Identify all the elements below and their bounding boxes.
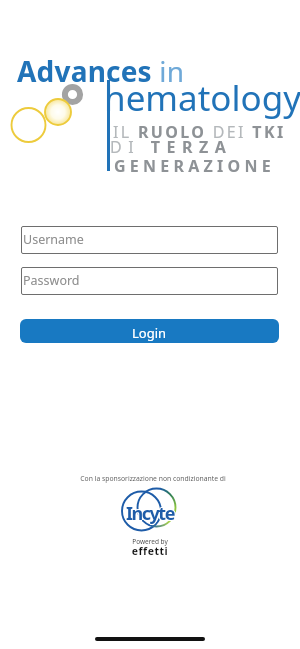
staticText: effetti <box>0 544 300 558</box>
staticText: Incyte <box>0 501 300 526</box>
staticText: Incyte <box>0 502 300 527</box>
staticText: Incyte <box>1 501 300 526</box>
staticText: Username <box>23 231 84 248</box>
staticText: Advances in <box>17 52 185 90</box>
staticText: DI TERZA <box>110 136 233 158</box>
button[interactable]: Password <box>21 267 278 295</box>
staticText: IL RUOLO DEI TKI <box>113 121 286 143</box>
staticText: GENERAZIONE <box>114 155 275 177</box>
staticText: Login <box>132 324 167 342</box>
staticText: Con la sponsorizzazione non condizionant… <box>3 474 300 483</box>
button[interactable]: Login <box>20 319 279 343</box>
staticText: Incyte <box>0 501 299 526</box>
staticText: Incyte <box>0 500 300 525</box>
button[interactable]: Username <box>21 226 278 254</box>
staticText: hematology <box>104 74 300 122</box>
staticText: Powered by <box>0 537 300 546</box>
staticText: Password <box>23 272 80 289</box>
